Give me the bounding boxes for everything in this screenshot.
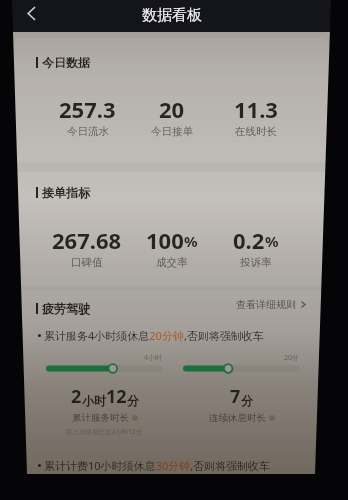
- staticText: 累计计费10小时须休息30分钟,否则将强制收车: [44, 458, 271, 473]
- staticText: 数据看板: [142, 6, 202, 25]
- staticText: 7: [230, 384, 241, 409]
- staticText: 今日接单: [151, 125, 193, 138]
- staticText: 12: [106, 384, 127, 409]
- staticText: 查看详细规则: [236, 298, 296, 311]
- staticText: 累计服务时长: [72, 412, 129, 424]
- staticText: 0.2: [233, 225, 265, 255]
- staticText: 小时: [82, 393, 106, 408]
- staticText: 4小时: [144, 353, 163, 363]
- staticText: 投诉率: [240, 256, 272, 269]
- staticText: 20分: [284, 353, 300, 363]
- staticText: 分: [241, 393, 253, 408]
- staticText: 257.3: [59, 94, 116, 124]
- staticText: 20: [159, 94, 185, 124]
- staticText: 267.68: [52, 225, 122, 255]
- staticText: 今日流水: [67, 125, 109, 138]
- staticText: 分: [127, 393, 139, 408]
- staticText: 11.3: [234, 94, 278, 124]
- staticText: 100: [146, 225, 184, 255]
- staticText: %: [265, 231, 279, 251]
- button[interactable]: Back: [15, 0, 47, 29]
- staticText: 距上次休息已过2小时12分: [66, 427, 143, 436]
- staticText: 累计服务4小时须休息20分钟,否则将强制收车: [44, 328, 264, 343]
- staticText: 口碑值: [71, 256, 103, 269]
- staticText: 成交率: [156, 256, 188, 269]
- staticText: 今日数据: [42, 55, 90, 70]
- staticText: 在线时长: [235, 125, 277, 138]
- staticText: 疲劳驾驶: [42, 301, 90, 316]
- staticText: 连续休息时长: [209, 412, 266, 424]
- button[interactable]: 查看详细规则: [14, 298, 307, 311]
- staticText: 接单指标: [42, 185, 90, 200]
- staticText: %: [184, 231, 198, 251]
- staticText: 2: [71, 384, 82, 409]
